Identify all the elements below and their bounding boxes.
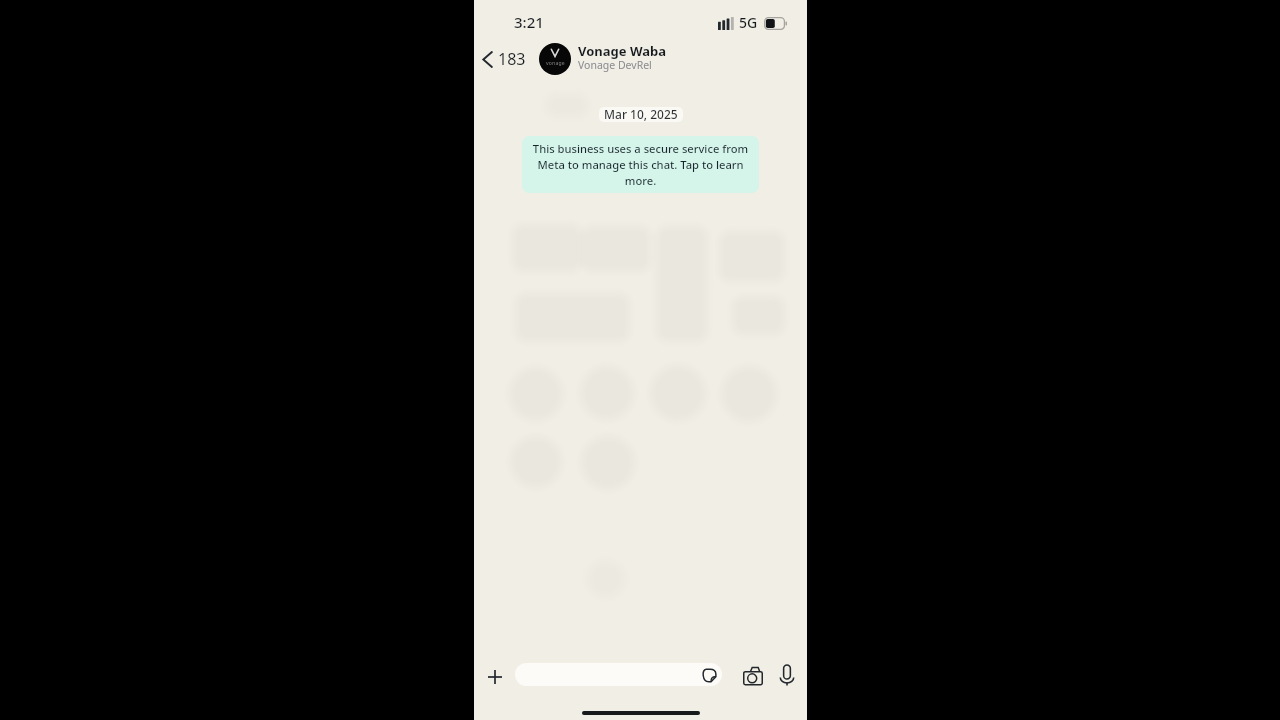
staticText: Vonage DevRel	[578, 58, 652, 72]
button[interactable]: Camera	[742, 665, 764, 687]
staticText: This business uses a secure service from…	[530, 141, 751, 188]
staticText: 5G	[739, 13, 758, 32]
button[interactable]: Voice message	[776, 664, 798, 686]
staticText: 183	[498, 48, 526, 70]
staticText: Mar 10, 2025	[604, 107, 678, 121]
staticText: 3:21	[514, 12, 544, 32]
button[interactable]: Message	[515, 663, 722, 686]
button[interactable]: vonage	[539, 42, 667, 76]
button[interactable]: This business uses a secure service from…	[522, 136, 759, 193]
staticText: vonage	[546, 60, 565, 67]
button[interactable]: Stickers	[697, 664, 721, 686]
button[interactable]: Attach	[482, 664, 507, 689]
staticText: Vonage Waba	[578, 42, 667, 60]
button[interactable]: Back	[478, 44, 530, 74]
